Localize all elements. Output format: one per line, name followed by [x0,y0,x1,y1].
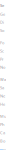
button[interactable]: Ph [0,120,6,129]
staticText: Mu [0,114,6,119]
button[interactable]: Ge [0,10,6,18]
staticText: Ge [0,11,5,17]
staticText: Bo [0,138,5,143]
button[interactable]: Di [0,18,6,26]
button[interactable]: Home [0,145,3,150]
staticText: m [2,147,6,150]
staticText: Sc [0,48,4,53]
staticText: He [0,101,5,107]
staticText: Ca [0,130,5,135]
button[interactable]: Sc [0,47,6,55]
button[interactable]: Mu [0,112,6,120]
button[interactable]: Settings [3,145,6,150]
button[interactable]: He [0,100,6,108]
button[interactable]: No [0,63,6,71]
staticText: Di [0,20,4,25]
staticText: m [0,147,3,150]
button[interactable]: So [0,26,6,35]
button[interactable]: Fo [0,39,6,47]
staticText: Wa [0,77,6,82]
button[interactable]: Ne [0,92,6,100]
button[interactable]: Ca [0,129,6,137]
button[interactable]: Wa [0,75,6,84]
staticText: Fo [0,40,4,45]
staticText: So [0,28,4,33]
staticText: Sa [0,85,4,90]
staticText: Pr [0,56,4,62]
button[interactable]: Pr [0,55,6,63]
staticText: Ne [0,93,5,98]
button[interactable]: Bo [0,137,6,145]
staticText: Se [0,3,4,8]
staticText: No [0,65,5,70]
button[interactable]: Sa [0,84,6,92]
staticText: Ph [0,122,4,127]
